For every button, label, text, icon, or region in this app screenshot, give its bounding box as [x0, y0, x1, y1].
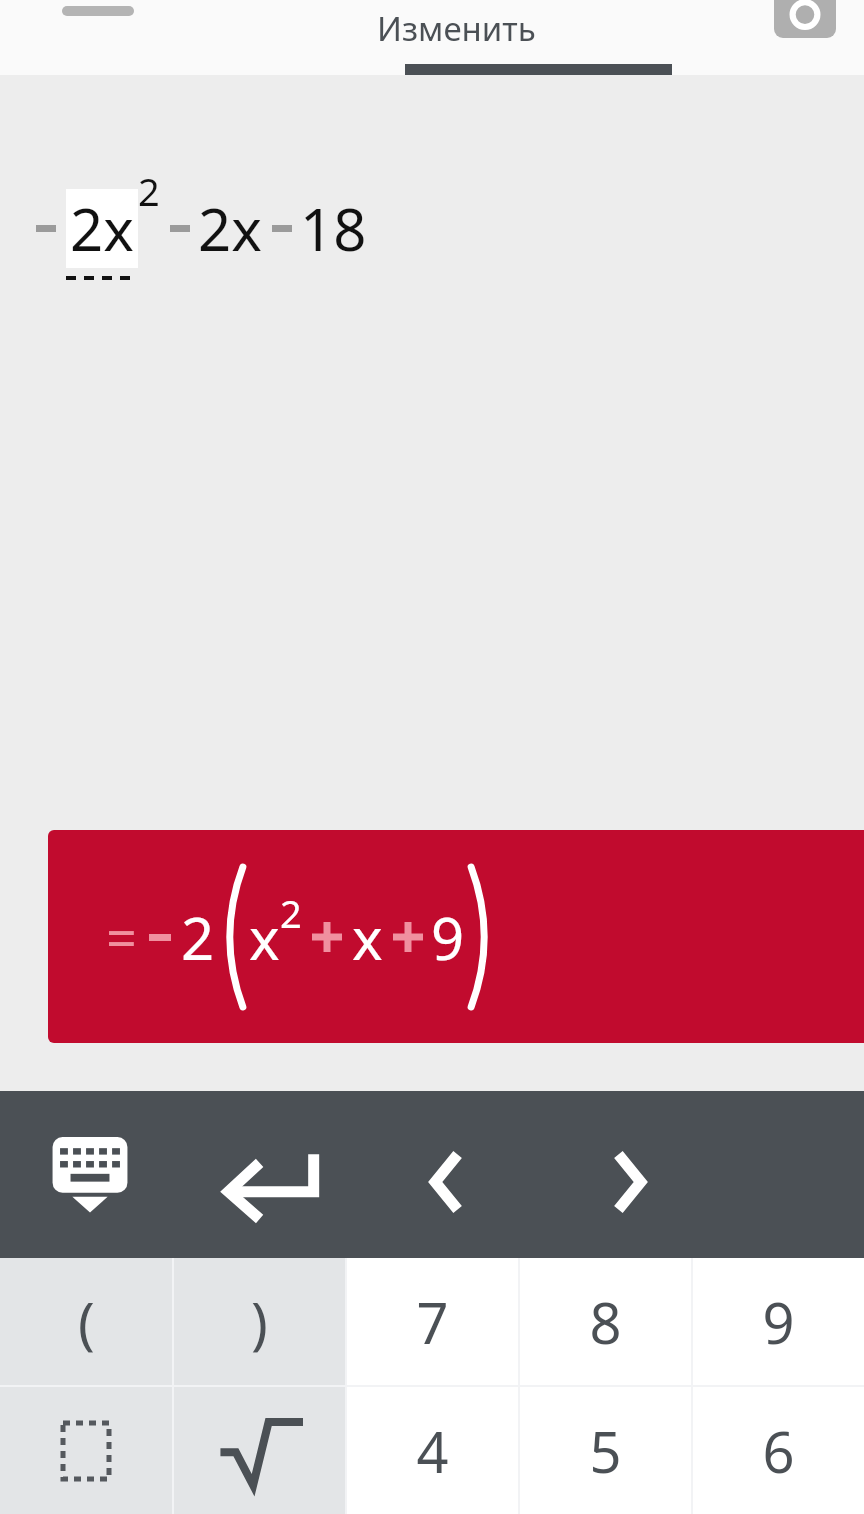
staticText: 2 [181, 898, 215, 977]
staticText: 2x [70, 189, 134, 268]
button[interactable]: 9 [693, 1258, 864, 1385]
staticText: 6 [762, 1413, 795, 1489]
button[interactable]: Minus [62, 6, 134, 16]
staticText: x [352, 898, 383, 977]
button[interactable]: Enter [218, 1147, 322, 1219]
button[interactable]: Изменить [377, 6, 536, 51]
staticText: ( [78, 1284, 95, 1360]
button[interactable]: 5 [520, 1387, 691, 1514]
staticText: 8 [589, 1284, 622, 1360]
staticText: 4 [416, 1413, 449, 1489]
button[interactable]: Next [588, 1139, 668, 1225]
button[interactable] [0, 1387, 172, 1514]
button[interactable]: 6 [693, 1387, 864, 1514]
staticText: x [249, 898, 280, 977]
staticText: = [106, 900, 137, 974]
staticText: 2 [280, 887, 302, 939]
staticText: 9 [762, 1284, 795, 1360]
staticText: 2x [198, 189, 262, 268]
button[interactable]: ) [174, 1258, 345, 1385]
button[interactable] [174, 1387, 345, 1514]
button[interactable]: 7 [347, 1258, 518, 1385]
staticText: 5 [589, 1413, 622, 1489]
button[interactable]: Hide keyboard [38, 1137, 142, 1227]
button[interactable]: 4 [347, 1387, 518, 1514]
staticText: 18 [300, 189, 367, 268]
staticText: 7 [416, 1284, 449, 1360]
button[interactable]: 8 [520, 1258, 691, 1385]
staticText: ) [251, 1284, 268, 1360]
staticText: 2 [138, 165, 160, 217]
button[interactable]: = [48, 830, 864, 1043]
button[interactable]: Previous [408, 1139, 488, 1225]
button[interactable]: Camera [774, 0, 836, 38]
staticText: 9 [431, 898, 465, 977]
staticText: Изменить [377, 6, 536, 51]
button[interactable]: ( [0, 1258, 172, 1385]
